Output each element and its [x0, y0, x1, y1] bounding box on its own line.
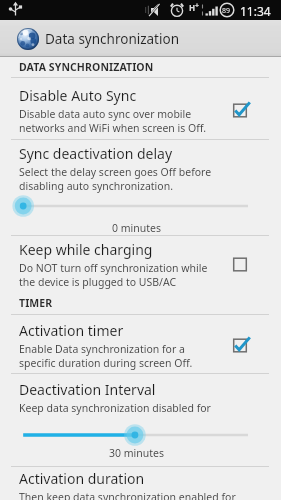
- staticText: Activation timer: [19, 321, 124, 340]
- staticText: 0 minutes: [0, 221, 273, 235]
- button[interactable]: Sync deactivation delay: [19, 144, 281, 193]
- staticText: Do NOT turn off synchronization while th…: [19, 261, 208, 289]
- staticText: Sync deactivation delay: [19, 144, 173, 163]
- staticText: Keep while charging: [19, 240, 153, 259]
- staticText: Activation duration: [19, 469, 145, 488]
- staticText: Data synchronization: [45, 30, 179, 48]
- staticText: +: [195, 1, 200, 11]
- staticText: Select the delay screen goes Off before …: [19, 165, 212, 193]
- staticText: TIMER: [19, 296, 53, 310]
- button[interactable]: Deactivation Interval: [19, 380, 281, 415]
- button[interactable]: Keep while charging: [0, 240, 281, 289]
- staticText: Disable Auto Sync: [19, 86, 137, 105]
- button[interactable]: Activation timer: [0, 321, 281, 370]
- button[interactable]: Activation duration: [19, 469, 281, 500]
- button[interactable]: 0 minutes: [0, 192, 281, 220]
- other: Disabled: [233, 256, 250, 273]
- staticText: Disable data auto sync over mobile netwo…: [19, 107, 207, 135]
- other: Enabled: [233, 102, 250, 119]
- staticText: 30 minutes: [0, 446, 273, 460]
- staticText: 89: [222, 6, 231, 16]
- staticText: Enable Data synchronization for a specif…: [19, 342, 193, 370]
- staticText: Then keep data synchronization enabled f…: [19, 490, 236, 500]
- staticText: DATA SYNCHRONIZATION: [19, 60, 154, 74]
- button[interactable]: Disable Auto Sync: [0, 86, 281, 135]
- other: App icon: [17, 28, 39, 50]
- staticText: Deactivation Interval: [19, 380, 156, 399]
- staticText: H: [189, 2, 196, 13]
- staticText: Keep data synchronization disabled for: [19, 401, 211, 415]
- button[interactable]: 30 minutes: [0, 421, 281, 449]
- staticText: 11:34: [240, 3, 271, 19]
- other: Enabled: [233, 337, 250, 354]
